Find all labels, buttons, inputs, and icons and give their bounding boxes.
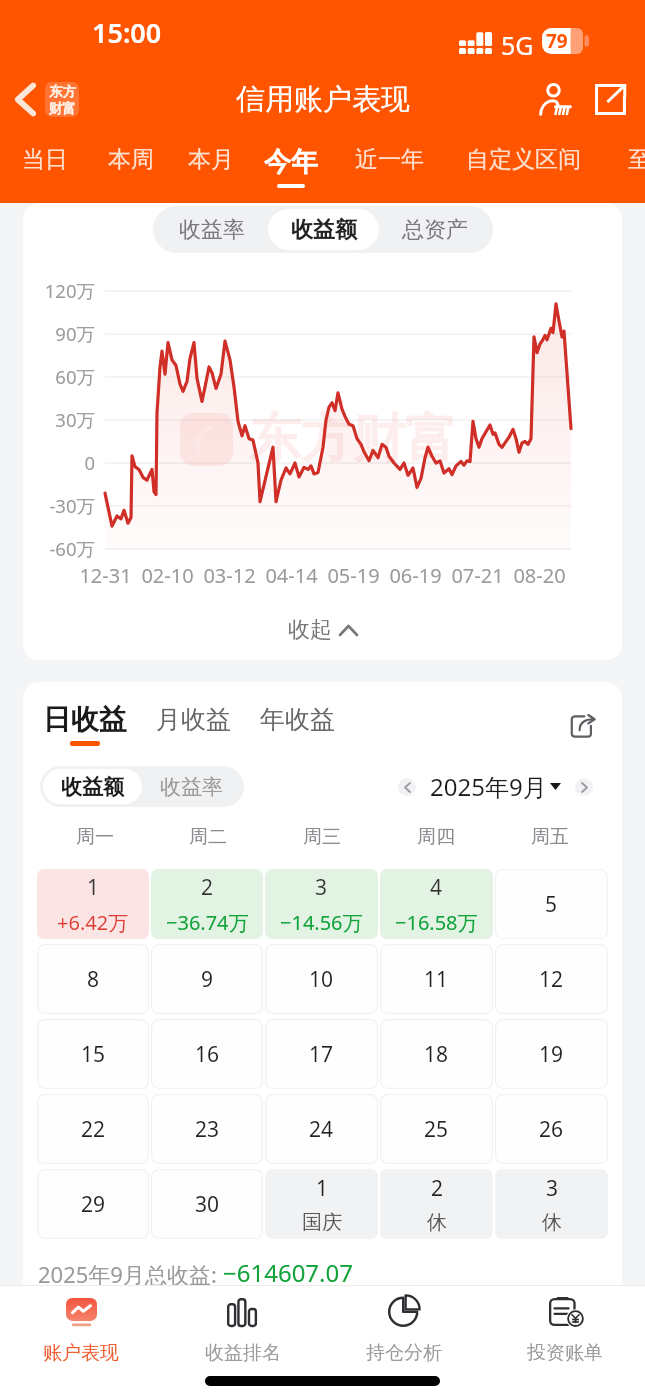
staticText: 12 [539, 965, 564, 994]
staticText: -30万 [49, 493, 95, 518]
staticText: 05-19 [327, 562, 380, 589]
button[interactable]: 2025年9月 [422, 770, 569, 803]
button[interactable]: 月收益 [156, 704, 231, 744]
staticText: 财富 [49, 100, 76, 117]
button[interactable]: 至 [616, 134, 645, 203]
staticText: 收起 [288, 616, 332, 644]
staticText: 账户表现 [43, 1341, 119, 1365]
staticText: 120万 [44, 278, 95, 303]
staticText: 06-19 [389, 562, 442, 589]
button[interactable]: 26 [495, 1094, 608, 1164]
staticText: 25 [424, 1115, 449, 1144]
staticText: 11 [424, 965, 449, 994]
button[interactable]: 29 [37, 1169, 149, 1239]
staticText: 年收益 [260, 704, 335, 735]
button[interactable]: 2 [151, 869, 263, 939]
staticText: 收益率 [160, 774, 223, 800]
button[interactable]: 12 [495, 944, 608, 1014]
staticText: 18 [424, 1040, 449, 1069]
button[interactable]: 近一年 [343, 134, 432, 203]
button[interactable]: 总资产 [379, 209, 490, 250]
button[interactable]: 收益排名 [162, 1286, 323, 1398]
button[interactable]: 收益率 [142, 769, 241, 804]
staticText: 8 [87, 965, 100, 994]
staticText: 投资账单 [527, 1341, 603, 1365]
button[interactable]: 9 [151, 944, 263, 1014]
button[interactable]: 3 [495, 1169, 608, 1239]
staticText: 月收益 [156, 704, 231, 735]
staticText: 23 [195, 1115, 220, 1144]
button[interactable]: 本月 [176, 134, 245, 203]
button[interactable]: 17 [265, 1019, 378, 1089]
staticText: 3 [546, 1174, 559, 1203]
staticText: 收益率 [179, 216, 245, 244]
staticText: 29 [81, 1190, 106, 1219]
staticText: 79 [546, 28, 568, 54]
button[interactable]: 3 [265, 869, 378, 939]
staticText: 近一年 [355, 145, 424, 174]
staticText: 休 [542, 1210, 562, 1235]
button[interactable]: 18 [380, 1019, 493, 1089]
button[interactable]: 30 [151, 1169, 263, 1239]
button[interactable]: 1 [37, 869, 149, 939]
staticText: 至 [628, 145, 645, 174]
staticText: 10 [309, 965, 334, 994]
staticText: 周一 [76, 825, 114, 849]
button[interactable]: 23 [151, 1094, 263, 1164]
button[interactable]: 22 [37, 1094, 149, 1164]
button[interactable]: 24 [265, 1094, 378, 1164]
staticText: 02-10 [141, 562, 194, 589]
button[interactable]: Share [586, 75, 634, 123]
staticText: 本月 [188, 145, 234, 174]
button[interactable]: 16 [151, 1019, 263, 1089]
staticText: 东方财富 [249, 406, 457, 472]
staticText: 4 [430, 873, 443, 902]
button[interactable]: 自定义区间 [454, 134, 588, 203]
staticText: 5G [501, 28, 534, 62]
staticText: 收益额 [61, 774, 124, 800]
staticText: 19 [539, 1040, 564, 1069]
button[interactable]: Previous month [392, 772, 422, 802]
staticText: 17 [309, 1040, 334, 1069]
staticText: 2 [431, 1174, 444, 1203]
staticText: 5 [545, 890, 558, 919]
button[interactable]: 收益率 [156, 209, 268, 250]
button[interactable]: 收益额 [268, 209, 379, 250]
staticText: 15 [81, 1040, 106, 1069]
button[interactable]: 15 [37, 1019, 149, 1089]
button[interactable]: 本周 [96, 134, 164, 203]
staticText: 16 [195, 1040, 220, 1069]
button[interactable]: 账户表现 [0, 1286, 162, 1398]
staticText: 30 [195, 1190, 220, 1219]
button[interactable]: 1 [265, 1169, 378, 1239]
button[interactable]: 19 [495, 1019, 608, 1089]
staticText: −614607.07 [223, 1256, 353, 1289]
button[interactable]: 4 [380, 869, 493, 939]
staticText: -60万 [49, 536, 95, 561]
button[interactable]: 投资账单 [484, 1286, 645, 1398]
staticText: 今年 [264, 145, 318, 179]
button[interactable]: 25 [380, 1094, 493, 1164]
staticText: 90万 [55, 321, 95, 346]
button[interactable]: 收益额 [43, 769, 142, 804]
staticText: 26 [539, 1115, 564, 1144]
button[interactable]: 收起 [23, 598, 622, 654]
button[interactable]: 日收益 [43, 702, 127, 746]
button[interactable]: 10 [265, 944, 378, 1014]
staticText: 07-21 [451, 562, 504, 589]
button[interactable]: 5 [495, 869, 608, 939]
button[interactable]: 持仓分析 [323, 1286, 484, 1398]
button[interactable]: 今年 [252, 134, 330, 203]
button[interactable]: 当日 [10, 134, 78, 203]
staticText: 持仓分析 [366, 1341, 442, 1365]
staticText: 信用账户表现 [236, 81, 410, 118]
button[interactable]: Customer service [531, 75, 579, 123]
button[interactable]: Back [0, 76, 87, 123]
button[interactable]: 年收益 [260, 704, 335, 744]
button[interactable]: Next month [569, 772, 599, 802]
staticText: 休 [427, 1210, 447, 1235]
button[interactable]: 2 [380, 1169, 493, 1239]
button[interactable]: 8 [37, 944, 149, 1014]
button[interactable]: Share [562, 704, 602, 744]
button[interactable]: 11 [380, 944, 493, 1014]
